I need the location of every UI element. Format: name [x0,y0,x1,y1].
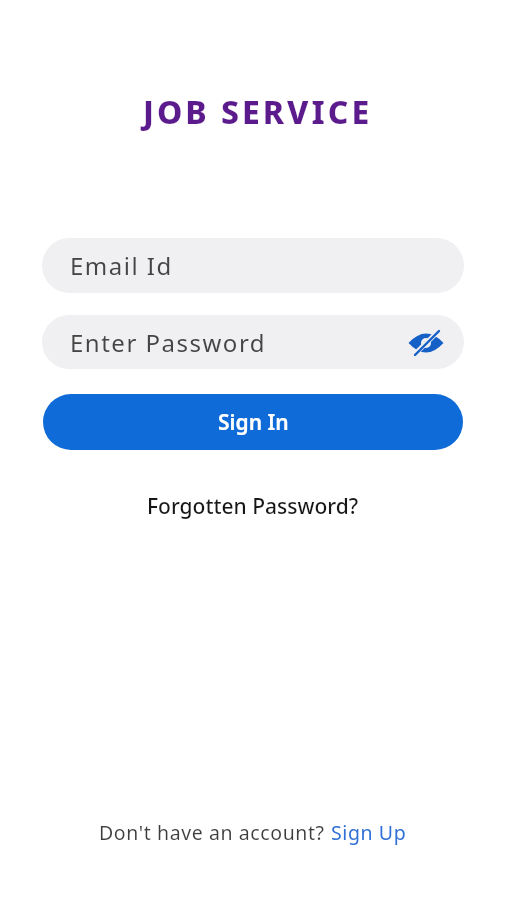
button[interactable]: Sign Up [331,819,407,846]
staticText: JOB SERVICE [143,90,373,134]
staticText: Email Id [70,249,173,282]
button[interactable]: Forgotten Password? [147,492,359,521]
staticText: Enter Password [70,326,267,359]
button[interactable]: Enter Password [42,315,464,369]
button[interactable] [408,328,444,356]
staticText: Sign In [218,408,289,437]
button[interactable]: Email Id [42,238,464,293]
button[interactable]: Sign In [43,394,463,450]
staticText: Don't have an account? [99,819,331,846]
